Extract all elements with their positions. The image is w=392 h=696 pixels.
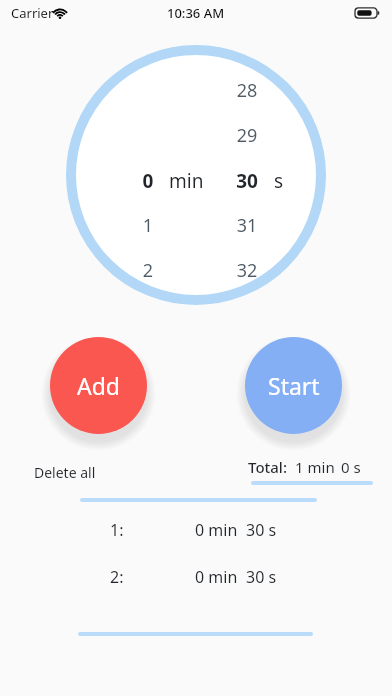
staticText: 0 s [341,457,361,477]
button[interactable]: Total: [248,457,370,485]
button[interactable]: 2 [118,258,178,283]
staticText: Start [268,370,320,401]
other: Wi-Fi signal [52,7,68,19]
staticText: Total: [248,457,288,477]
staticText: 0 min [195,519,238,541]
staticText: 32 [217,258,277,283]
button[interactable]: 30 [217,168,277,194]
staticText: 29 [217,123,277,148]
button[interactable]: 0 [118,168,178,194]
staticText: min [169,168,204,194]
staticText: Delete all [34,463,96,482]
other: Battery [355,7,380,19]
button[interactable]: 29 [217,123,277,148]
button[interactable]: Add [50,337,147,434]
staticText: 30 [217,168,277,194]
staticText: 10:36 AM [167,4,225,22]
button[interactable]: Delete all [28,458,102,487]
staticText: Add [77,370,120,401]
staticText: s [274,168,284,194]
staticText: 2 [118,258,178,283]
staticText: 0 [118,168,178,194]
staticText: 30 s [246,566,277,588]
button[interactable]: 1 [118,213,178,238]
staticText: 1 min [295,457,335,477]
staticText: 0 min [195,566,238,588]
staticText: 30 s [246,519,277,541]
staticText: 31 [217,213,277,238]
button[interactable]: 28 [217,78,277,103]
staticText: 1 [118,213,178,238]
button[interactable]: 2: [40,563,340,591]
button[interactable]: Start [245,337,342,434]
staticText: 2: [110,566,124,588]
button[interactable]: 31 [217,213,277,238]
staticText: Carrier [11,4,54,22]
staticText: 28 [217,78,277,103]
button[interactable]: 1: [40,516,340,544]
button[interactable]: 32 [217,258,277,283]
staticText: 1: [110,519,124,541]
